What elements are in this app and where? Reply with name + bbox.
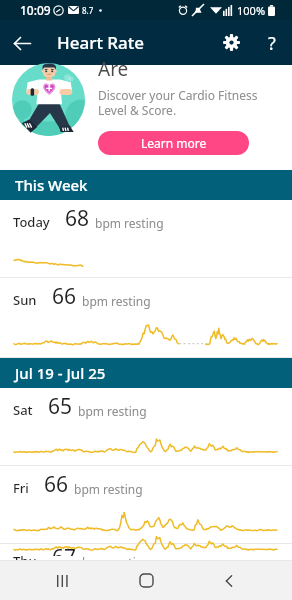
staticText: 66 (44, 470, 69, 499)
staticText: bpm resting (82, 554, 151, 567)
button[interactable]: Recents (43, 561, 83, 600)
staticText: Learn more (141, 135, 207, 151)
staticText: Discover your Cardio Fitness Level & Sco… (98, 87, 258, 118)
staticText: bpm resting (82, 293, 151, 309)
staticText: Sun (13, 291, 37, 309)
staticText: 8.7 (82, 5, 94, 16)
staticText: 65 (48, 392, 73, 421)
staticText: bpm resting (78, 403, 147, 419)
staticText: Fri (13, 479, 29, 497)
staticText: Jul 19 - Jul 25 (15, 363, 106, 383)
button[interactable]: Sat (0, 388, 292, 466)
staticText: 67 (52, 543, 77, 556)
staticText: 66 (52, 282, 77, 311)
staticText: Today (13, 213, 50, 231)
staticText: Sat (13, 401, 33, 419)
staticText: bpm resting (95, 215, 164, 231)
staticText: bpm resting (74, 481, 143, 497)
button[interactable]: Help (252, 23, 292, 63)
staticText: 100% (237, 3, 266, 18)
staticText: Heart Rate (57, 31, 145, 54)
staticText: 10:09 (20, 2, 51, 18)
staticText: This Week (15, 175, 88, 195)
button[interactable]: Back (209, 561, 249, 600)
staticText: ? (268, 31, 276, 56)
button[interactable]: Sun (0, 278, 292, 358)
button[interactable]: Thu (0, 544, 292, 561)
staticText: Thu (13, 552, 37, 565)
button[interactable]: Settings (211, 22, 252, 63)
button[interactable]: Fri (0, 466, 292, 544)
button[interactable]: Learn more (98, 131, 249, 155)
staticText: 68 (65, 204, 90, 233)
button[interactable]: Back (0, 21, 44, 65)
button[interactable]: Home (126, 561, 166, 600)
staticText: Are (98, 56, 129, 82)
button[interactable]: Today (0, 200, 292, 278)
